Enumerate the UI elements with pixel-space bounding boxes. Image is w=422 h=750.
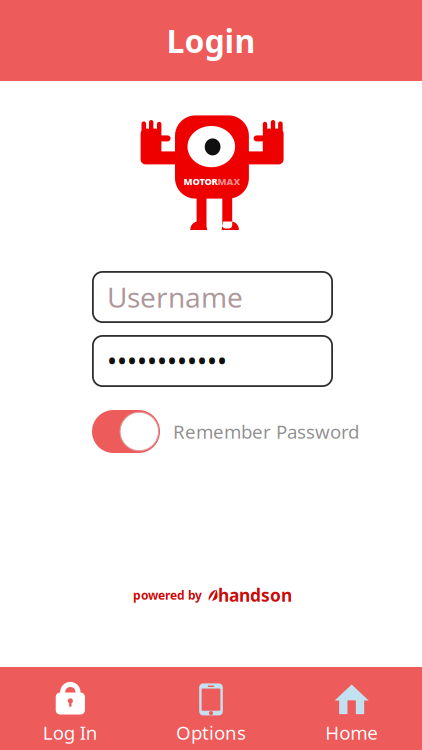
- staticText: Log In: [43, 720, 98, 745]
- staticText: Username: [107, 278, 243, 316]
- staticText: powered by: [133, 587, 202, 603]
- staticText: handson: [218, 583, 292, 606]
- staticText: MAX: [218, 175, 241, 188]
- button[interactable]: Remember Password: [92, 410, 160, 453]
- staticText: Options: [176, 720, 246, 745]
- button[interactable]: Home: [281, 667, 422, 750]
- staticText: MOTOR: [184, 175, 218, 188]
- staticText: Login: [166, 19, 255, 62]
- staticText: Home: [325, 720, 378, 745]
- button[interactable]: Options: [141, 667, 281, 750]
- staticText: ••••••••••••: [107, 343, 227, 379]
- staticText: Remember Password: [173, 419, 359, 444]
- button[interactable]: Log In: [0, 667, 141, 750]
